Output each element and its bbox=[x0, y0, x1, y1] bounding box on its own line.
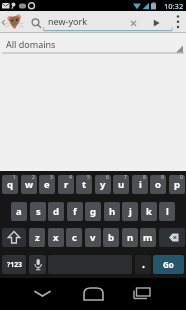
button[interactable] bbox=[126, 280, 154, 308]
staticText: j bbox=[129, 205, 132, 218]
button[interactable]: y bbox=[95, 175, 111, 194]
button[interactable]: s bbox=[30, 202, 46, 221]
staticText: l bbox=[166, 205, 169, 218]
button[interactable]: k bbox=[141, 202, 157, 221]
button[interactable]: n bbox=[122, 228, 138, 247]
staticText: e bbox=[44, 178, 50, 191]
staticText: q bbox=[7, 178, 14, 191]
button[interactable]: d bbox=[48, 202, 64, 221]
staticText: w bbox=[25, 178, 34, 191]
button[interactable]: All domains bbox=[0, 33, 186, 54]
button[interactable] bbox=[159, 228, 185, 247]
staticText: g bbox=[90, 205, 97, 218]
button[interactable]: p bbox=[169, 175, 185, 194]
button[interactable]: ?123 bbox=[2, 255, 26, 274]
button[interactable]: t bbox=[76, 175, 92, 194]
button[interactable]: w bbox=[21, 175, 37, 194]
button[interactable] bbox=[2, 228, 26, 247]
button[interactable]: o bbox=[150, 175, 166, 194]
staticText: 4 bbox=[69, 175, 72, 181]
staticText: d bbox=[53, 205, 60, 218]
button[interactable]: q bbox=[2, 175, 18, 194]
button[interactable]: x bbox=[48, 228, 64, 247]
staticText: 7 bbox=[124, 175, 127, 181]
staticText: 8 bbox=[143, 175, 146, 181]
staticText: 5 bbox=[87, 175, 90, 181]
button[interactable]: h bbox=[104, 202, 120, 221]
staticText: 3 bbox=[50, 175, 53, 181]
button[interactable]: u bbox=[113, 175, 129, 194]
button[interactable]: m bbox=[140, 228, 156, 247]
staticText: c bbox=[72, 231, 77, 244]
button[interactable]: c bbox=[66, 228, 82, 247]
button[interactable] bbox=[30, 11, 122, 33]
staticText: 1 bbox=[13, 175, 16, 181]
staticText: m bbox=[143, 231, 153, 244]
staticText: new-york bbox=[48, 15, 87, 27]
button[interactable] bbox=[0, 11, 30, 33]
staticText: k bbox=[146, 205, 152, 218]
staticText: All domains bbox=[6, 38, 56, 50]
staticText: 2 bbox=[32, 175, 35, 181]
staticText: z bbox=[35, 231, 40, 244]
staticText: 10:32 bbox=[164, 1, 184, 11]
button[interactable] bbox=[33, 280, 61, 308]
staticText: i bbox=[139, 178, 142, 191]
staticText: u bbox=[118, 178, 125, 191]
button[interactable] bbox=[79, 280, 107, 308]
staticText: h bbox=[109, 205, 116, 218]
staticText: a bbox=[16, 205, 22, 218]
staticText: t bbox=[82, 178, 87, 191]
staticText: 6 bbox=[106, 175, 109, 181]
staticText: v bbox=[90, 231, 96, 244]
button[interactable]: j bbox=[122, 202, 138, 221]
button[interactable]: f bbox=[67, 202, 83, 221]
staticText: f bbox=[73, 205, 77, 218]
staticText: 0 bbox=[180, 175, 183, 181]
staticText: s bbox=[36, 205, 41, 218]
button[interactable]: b bbox=[103, 228, 119, 247]
button[interactable] bbox=[29, 255, 46, 274]
button[interactable]: z bbox=[29, 228, 45, 247]
staticText: 9 bbox=[161, 175, 164, 181]
staticText: o bbox=[155, 178, 161, 191]
staticText: r bbox=[64, 178, 69, 191]
button[interactable]: e bbox=[39, 175, 55, 194]
button[interactable]: Go bbox=[153, 255, 184, 274]
button[interactable]: v bbox=[85, 228, 101, 247]
staticText: Go bbox=[163, 259, 174, 270]
staticText: y bbox=[100, 178, 106, 191]
button[interactable] bbox=[167, 11, 186, 33]
button[interactable]: r bbox=[58, 175, 74, 194]
button[interactable] bbox=[122, 11, 145, 33]
staticText: p bbox=[174, 178, 181, 191]
staticText: b bbox=[108, 231, 115, 244]
staticText: n bbox=[127, 231, 134, 244]
button[interactable] bbox=[135, 255, 151, 274]
staticText: x bbox=[53, 231, 59, 244]
button[interactable]: g bbox=[85, 202, 101, 221]
button[interactable]: l bbox=[159, 202, 175, 221]
staticText: ?123 bbox=[7, 260, 22, 269]
button[interactable] bbox=[145, 11, 167, 33]
button[interactable]: i bbox=[132, 175, 148, 194]
button[interactable]: a bbox=[11, 202, 27, 221]
